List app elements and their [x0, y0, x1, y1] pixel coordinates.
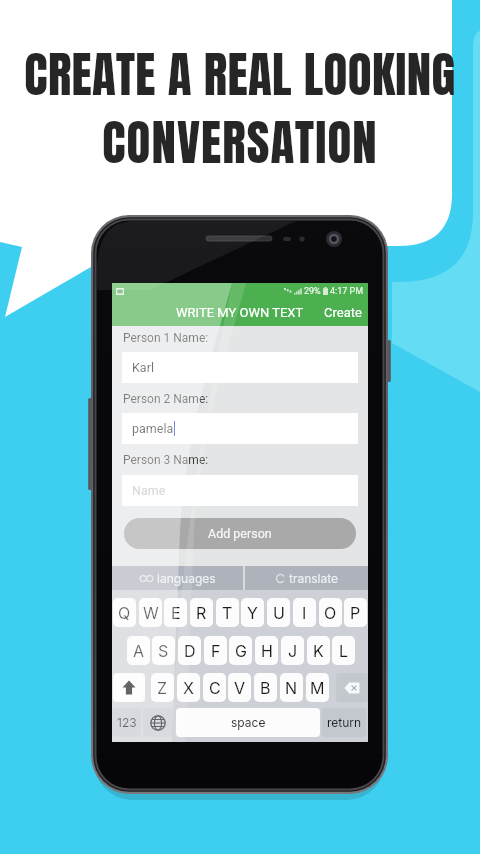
- staticText: Q: [118, 603, 131, 622]
- staticText: Karl: [132, 360, 154, 375]
- staticText: CONVERSATION: [0, 105, 480, 179]
- button[interactable]: U: [267, 598, 290, 627]
- staticText: I: [302, 603, 307, 622]
- staticText: pamela: [132, 421, 174, 436]
- staticText: 29%: [304, 286, 321, 297]
- staticText: K: [313, 641, 324, 660]
- button[interactable]: J: [281, 636, 304, 665]
- staticText: L: [339, 641, 349, 660]
- button[interactable]: X: [177, 673, 200, 702]
- button[interactable]: space: [176, 708, 320, 737]
- button[interactable]: Add person: [124, 518, 356, 549]
- staticText: C: [209, 678, 221, 697]
- button[interactable]: translate: [245, 566, 368, 590]
- staticText: Add person: [208, 526, 272, 541]
- staticText: Person 2 Name:: [123, 392, 209, 406]
- staticText: R: [196, 603, 207, 622]
- staticText: V: [234, 678, 246, 697]
- button[interactable]: O: [319, 598, 342, 627]
- staticText: 4:17 PM: [330, 286, 364, 297]
- button[interactable]: K: [307, 636, 330, 665]
- button[interactable]: H: [255, 636, 278, 665]
- button[interactable]: Shift: [113, 673, 145, 702]
- staticText: Person 1 Name:: [123, 331, 209, 345]
- staticText: W: [143, 603, 159, 622]
- staticText: J: [288, 641, 298, 660]
- button[interactable]: M: [306, 673, 329, 702]
- button[interactable]: A: [127, 636, 150, 665]
- button[interactable]: Q: [113, 598, 136, 627]
- staticText: G: [235, 641, 247, 660]
- button[interactable]: Z: [151, 673, 174, 702]
- staticText: Z: [157, 678, 168, 697]
- button[interactable]: T: [216, 598, 239, 627]
- staticText: T: [222, 603, 233, 622]
- button[interactable]: WRITE MY OWN TEXT: [112, 299, 368, 326]
- button[interactable]: C: [203, 673, 226, 702]
- button[interactable]: P: [344, 598, 367, 627]
- button[interactable]: E: [164, 598, 187, 627]
- button[interactable]: Backspace: [336, 673, 368, 702]
- button[interactable]: G: [229, 636, 252, 665]
- button[interactable]: pamela: [122, 413, 358, 444]
- button[interactable]: languages: [112, 566, 243, 590]
- staticText: languages: [157, 571, 216, 586]
- staticText: H: [261, 641, 273, 660]
- staticText: O: [324, 603, 337, 622]
- staticText: translate: [289, 571, 339, 586]
- staticText: D: [184, 641, 196, 660]
- button[interactable]: Karl: [122, 352, 358, 383]
- button[interactable]: Create: [318, 299, 368, 326]
- button[interactable]: 123: [112, 708, 141, 737]
- staticText: X: [183, 678, 194, 697]
- button[interactable]: S: [152, 636, 175, 665]
- button[interactable]: F: [204, 636, 227, 665]
- staticText: E: [171, 603, 181, 622]
- staticText: WRITE MY OWN TEXT: [176, 305, 304, 320]
- staticText: Person 3 Name:: [123, 453, 209, 467]
- button[interactable]: W: [139, 598, 162, 627]
- staticText: N: [285, 678, 298, 697]
- button[interactable]: D: [178, 636, 201, 665]
- staticText: Y: [247, 603, 258, 622]
- staticText: return: [327, 715, 362, 730]
- staticText: B: [260, 678, 271, 697]
- button[interactable]: return: [322, 708, 366, 737]
- staticText: F: [211, 641, 221, 660]
- button[interactable]: V: [228, 673, 251, 702]
- button[interactable]: Y: [241, 598, 264, 627]
- button[interactable]: B: [254, 673, 277, 702]
- staticText: 123: [117, 715, 137, 730]
- staticText: A: [133, 641, 145, 660]
- staticText: Name: [132, 483, 166, 498]
- staticText: space: [231, 715, 266, 730]
- button[interactable]: Switch keyboard: [143, 708, 173, 737]
- staticText: Create: [324, 305, 362, 320]
- button[interactable]: Name: [122, 475, 358, 506]
- staticText: P: [350, 603, 361, 622]
- staticText: U: [273, 603, 285, 622]
- staticText: M: [310, 678, 325, 697]
- button[interactable]: L: [332, 636, 355, 665]
- button[interactable]: R: [190, 598, 213, 627]
- button[interactable]: N: [280, 673, 303, 702]
- button[interactable]: I: [293, 598, 316, 627]
- staticText: CREATE A REAL LOOKING: [0, 37, 480, 111]
- staticText: S: [158, 641, 169, 660]
